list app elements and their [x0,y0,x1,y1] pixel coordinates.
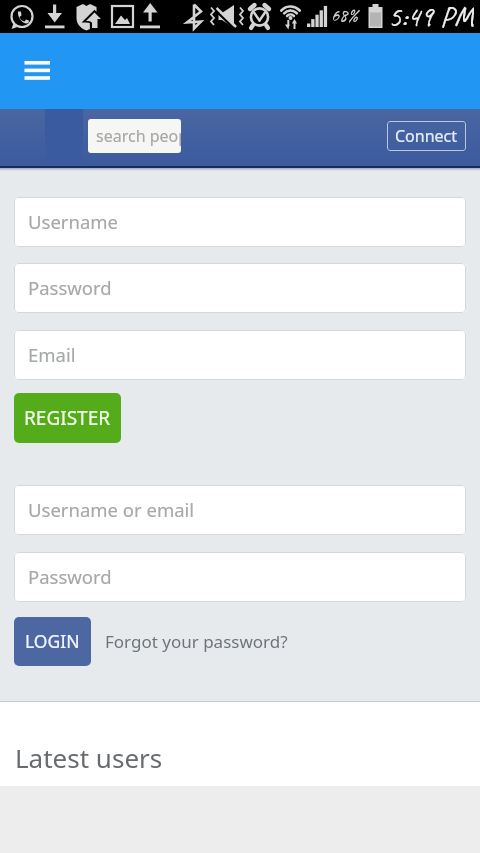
button[interactable]: Email [14,330,466,380]
staticText: Username or email [28,497,195,522]
staticText: 68% [331,4,358,27]
button[interactable]: LOGIN [14,617,91,666]
button[interactable]: Password [14,552,466,602]
staticText: Connect [395,125,458,147]
staticText: Username [28,209,119,234]
button[interactable]: Forgot your password? [105,630,288,653]
button[interactable]: search people [88,119,181,153]
button[interactable]: Username or email [14,485,466,535]
staticText: Email [28,342,76,367]
button[interactable]: Menu [13,56,61,86]
button[interactable]: Connect [387,121,466,151]
staticText: Password [28,275,112,300]
button[interactable]: Password [14,263,466,313]
staticText: LOGIN [25,629,80,653]
staticText: Forgot your password? [105,630,288,653]
staticText: search people [96,125,181,147]
staticText: REGISTER [24,405,111,431]
staticText: 5:49 PM [388,0,474,31]
staticText: Latest users [15,740,163,775]
button[interactable]: Username [14,197,466,247]
staticText: Password [28,564,112,589]
button[interactable]: REGISTER [14,393,121,443]
